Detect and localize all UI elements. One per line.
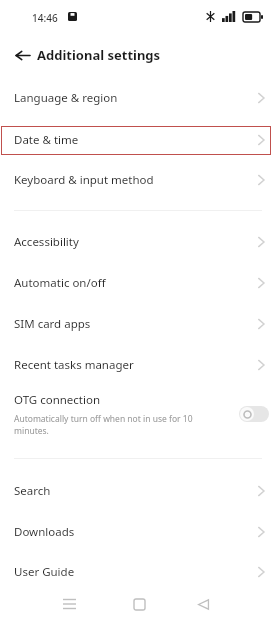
staticText: User Guide	[14, 564, 75, 580]
button[interactable]: Home	[125, 590, 153, 618]
button[interactable]: Keyboard & input method	[0, 160, 277, 200]
staticText: Automatic on/off	[14, 275, 106, 291]
button[interactable]: Date & time	[0, 120, 277, 160]
staticText: OTG connection	[14, 392, 101, 408]
staticText: Language & region	[14, 90, 118, 106]
staticText: Automatically turn off when not in use f…	[14, 413, 193, 437]
staticText: Keyboard & input method	[14, 172, 154, 188]
button[interactable]: Language & region	[0, 78, 277, 118]
staticText: Search	[14, 483, 51, 499]
button[interactable]: Recent tasks manager	[0, 345, 277, 385]
button[interactable]: OTG connection	[0, 386, 277, 442]
staticText: Date & time	[14, 132, 79, 148]
staticText: Accessibility	[14, 234, 79, 250]
button[interactable]: User Guide	[0, 552, 277, 592]
button[interactable]: Recent apps	[55, 590, 83, 618]
button[interactable]: Search	[0, 471, 277, 511]
button[interactable]: OTG connection toggle	[239, 406, 269, 422]
staticText: SIM card apps	[14, 316, 91, 332]
button[interactable]: Accessibility	[0, 222, 277, 262]
button[interactable]: Automatic on/off	[0, 263, 277, 303]
button[interactable]: SIM card apps	[0, 304, 277, 344]
button[interactable]: Downloads	[0, 512, 277, 552]
staticText: 14:46	[32, 11, 58, 25]
staticText: Downloads	[14, 524, 75, 540]
staticText: Additional settings	[37, 46, 161, 64]
button[interactable]: Back	[189, 590, 217, 618]
staticText: Recent tasks manager	[14, 357, 134, 373]
button[interactable]: Back	[8, 41, 36, 69]
